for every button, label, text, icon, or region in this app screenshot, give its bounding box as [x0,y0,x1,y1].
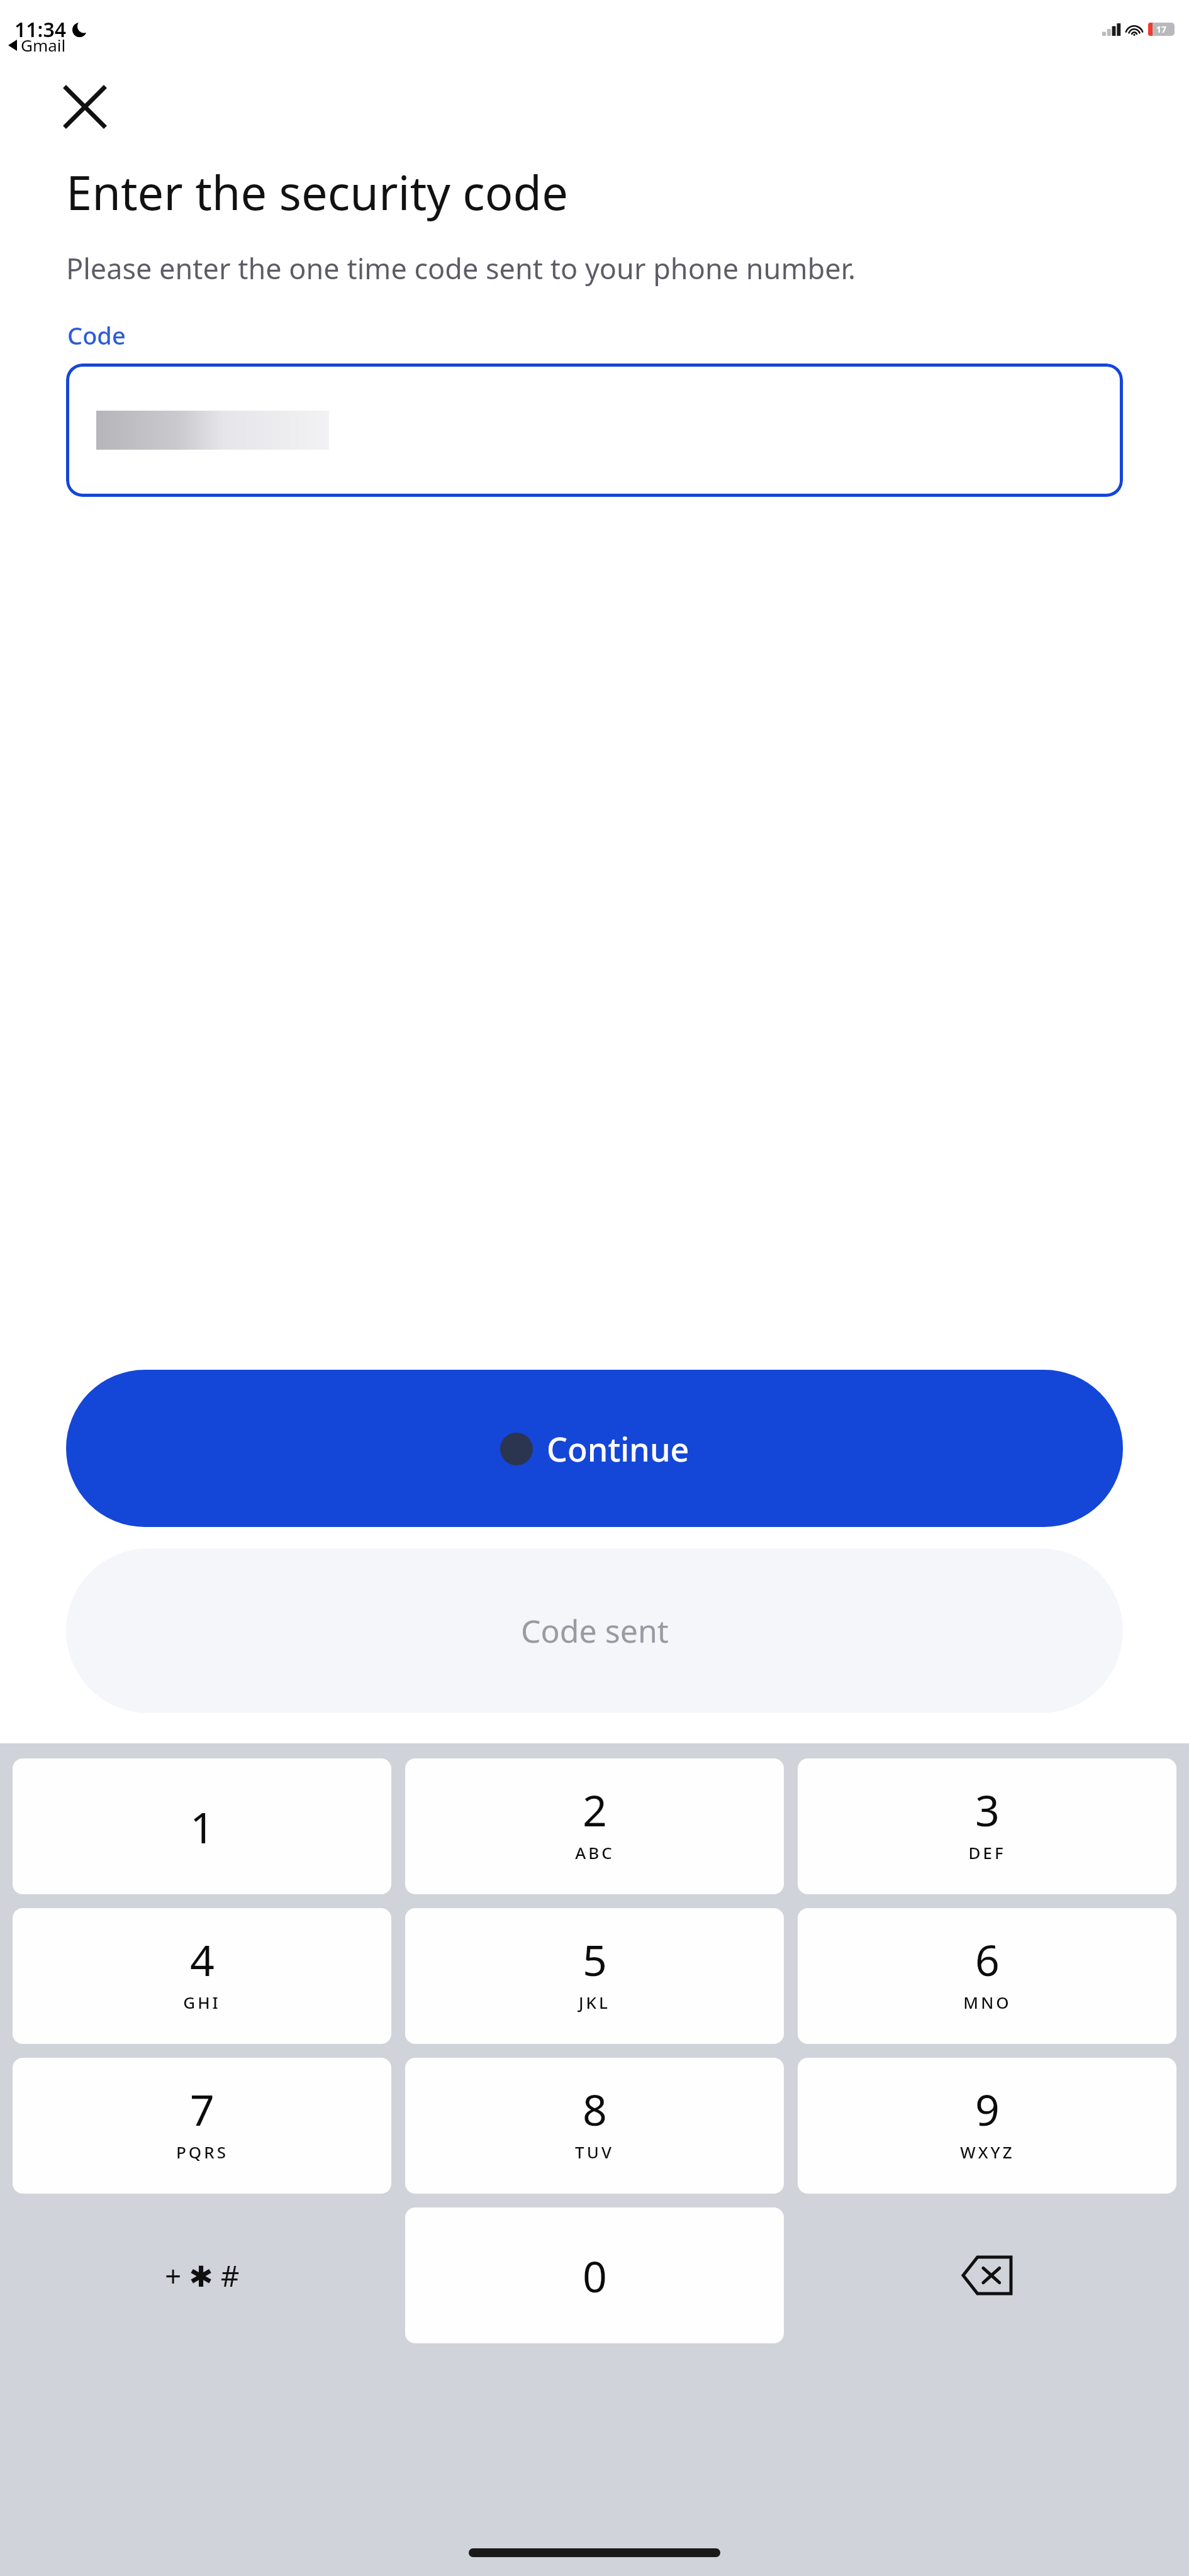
staticText: Code sent [521,1609,669,1652]
staticText: Please enter the one time code sent to y… [66,249,856,287]
staticText: 2 [583,1780,607,1839]
staticText: ABC [575,1841,615,1863]
staticText: 7 [190,2080,215,2138]
button[interactable]: 6 [798,1908,1176,2044]
staticText: Continue [547,1426,689,1471]
staticText: Gmail [21,34,66,56]
staticText: 9 [975,2080,1000,2138]
staticText: 11:34 [14,16,67,43]
staticText: DEF [968,1841,1006,1863]
button[interactable]: 4 [13,1908,391,2044]
button[interactable]: Code input [66,364,1123,497]
staticText: Enter the security code [66,160,568,224]
staticText: 0 [583,2246,607,2305]
button[interactable]: 2 [405,1758,784,1894]
button[interactable]: 8 [405,2058,784,2194]
staticText: 8 [583,2080,607,2138]
staticText: 4 [190,1930,215,1989]
button[interactable]: Code sent [66,1548,1123,1713]
staticText: GHI [183,1991,221,2013]
button[interactable]: 7 [13,2058,391,2194]
button[interactable]: 9 [798,2058,1176,2194]
staticText: 5 [583,1930,607,1989]
staticText: WXYZ [960,2141,1015,2163]
button[interactable]: 3 [798,1758,1176,1894]
staticText: 3 [975,1780,1000,1839]
staticText: 6 [975,1930,1000,1989]
staticText: Code [67,319,126,352]
staticText: + ✱ # [165,2256,240,2296]
button[interactable]: 1 [13,1758,391,1894]
staticText: TUV [575,2141,614,2163]
staticText: PQRS [176,2141,228,2163]
button[interactable]: Delete [798,2207,1176,2343]
button[interactable]: 5 [405,1908,784,2044]
staticText: 17 [1156,23,1167,35]
button[interactable]: 0 [405,2207,784,2343]
button[interactable]: Close [62,84,108,130]
button[interactable]: Continue [66,1370,1123,1527]
staticText: JKL [579,1991,610,2013]
button[interactable]: Symbols [13,2207,391,2343]
staticText: MNO [963,1991,1012,2013]
staticText: 1 [190,1797,215,1856]
